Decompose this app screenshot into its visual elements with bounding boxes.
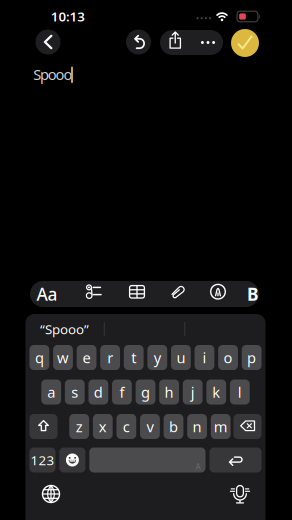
button[interactable]: z xyxy=(69,414,89,439)
staticText: 123 xyxy=(30,451,54,469)
button[interactable]: w xyxy=(53,345,73,370)
button[interactable]: l xyxy=(230,379,250,404)
button[interactable]: Attach xyxy=(170,283,184,299)
button[interactable]: o xyxy=(218,345,238,370)
button[interactable]: c xyxy=(116,414,136,439)
button[interactable]: k xyxy=(206,379,226,404)
button[interactable]: s xyxy=(65,379,85,404)
button[interactable]: t xyxy=(124,345,144,370)
button[interactable]: Back xyxy=(35,29,60,54)
staticText: i xyxy=(202,348,206,367)
staticText: v xyxy=(146,417,153,436)
button[interactable]: u xyxy=(171,345,191,370)
staticText: x xyxy=(99,417,107,436)
button[interactable]: 123 xyxy=(29,447,55,472)
button[interactable]: Markup xyxy=(210,284,226,300)
button[interactable]: q xyxy=(29,345,49,370)
staticText: Aa xyxy=(36,282,57,305)
button[interactable]: v xyxy=(140,414,160,439)
staticText: y xyxy=(154,348,161,367)
button[interactable]: d xyxy=(88,379,108,404)
staticText: k xyxy=(212,382,220,402)
staticText: p xyxy=(247,348,256,367)
button[interactable]: Emoji xyxy=(59,447,85,472)
staticText: g xyxy=(141,382,150,402)
staticText: j xyxy=(191,382,195,402)
button[interactable]: a xyxy=(41,379,61,404)
staticText: n xyxy=(193,417,202,436)
button[interactable]: Bold xyxy=(246,281,260,307)
button[interactable]: y xyxy=(147,345,167,370)
staticText: Spooo xyxy=(33,64,72,84)
button[interactable]: r xyxy=(100,345,120,370)
button[interactable]: p xyxy=(242,345,261,370)
button[interactable]: More xyxy=(193,30,223,55)
staticText: o xyxy=(223,348,232,367)
staticText: l xyxy=(238,382,242,402)
button[interactable]: Delete xyxy=(233,414,261,439)
staticText: h xyxy=(165,382,174,402)
button[interactable]: n xyxy=(187,414,207,439)
staticText: a xyxy=(47,382,55,402)
button[interactable]: h xyxy=(159,379,179,404)
button[interactable]: Table xyxy=(129,285,145,299)
button[interactable]: Return xyxy=(209,447,261,472)
button[interactable]: f xyxy=(112,379,132,404)
button[interactable]: Space xyxy=(89,447,205,472)
button[interactable]: Done xyxy=(231,29,259,57)
staticText: q xyxy=(35,348,44,367)
staticText: w xyxy=(57,348,69,367)
button[interactable]: e xyxy=(77,345,96,370)
button[interactable]: b xyxy=(164,414,183,439)
staticText: f xyxy=(119,382,124,402)
button[interactable]: m xyxy=(211,414,231,439)
button[interactable]: Next keyboard xyxy=(41,484,60,503)
staticText: 10:13 xyxy=(51,7,85,25)
button[interactable]: Shift xyxy=(29,414,57,439)
staticText: e xyxy=(83,348,91,367)
staticText: z xyxy=(76,417,83,436)
staticText: b xyxy=(169,417,178,436)
button[interactable]: g xyxy=(136,379,155,404)
staticText: u xyxy=(176,348,185,367)
button[interactable]: i xyxy=(195,345,214,370)
staticText: t xyxy=(131,348,136,367)
button[interactable]: x xyxy=(93,414,113,439)
button[interactable]: “Spooo” xyxy=(25,318,103,340)
button[interactable]: Dictation xyxy=(230,484,250,504)
button[interactable]: j xyxy=(183,379,203,404)
staticText: c xyxy=(123,417,130,436)
button[interactable]: Share xyxy=(159,30,190,55)
staticText: s xyxy=(71,382,78,402)
staticText: m xyxy=(214,417,228,436)
button[interactable]: Format xyxy=(32,281,62,307)
staticText: r xyxy=(107,348,113,367)
button[interactable]: Undo xyxy=(126,29,151,54)
staticText: d xyxy=(94,382,103,402)
staticText: B xyxy=(247,282,259,305)
staticText: “Spooo” xyxy=(40,320,89,338)
staticText: A xyxy=(195,462,200,472)
button[interactable]: Checklist xyxy=(77,284,107,302)
